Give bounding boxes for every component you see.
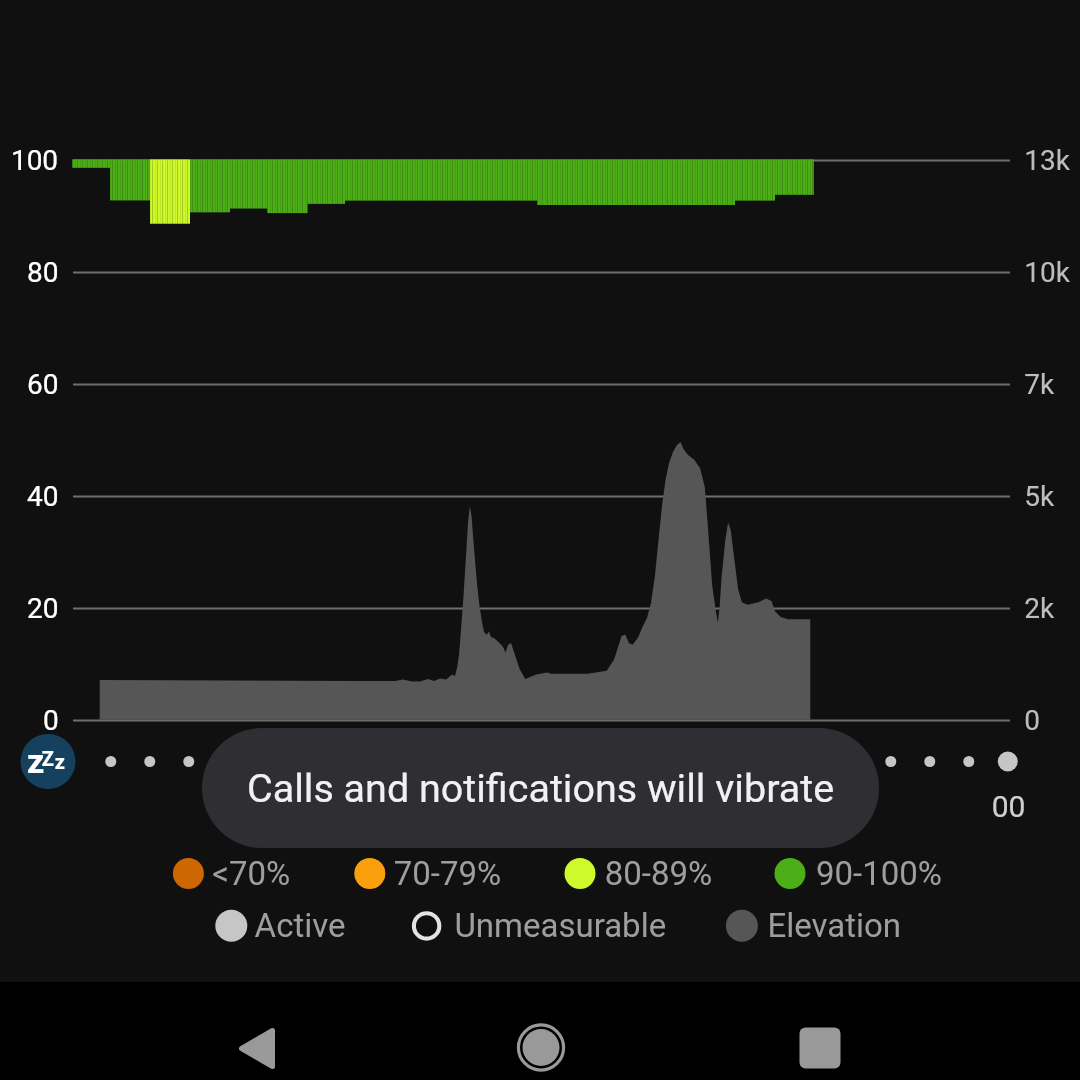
staticText: Calls and notifications will vibrate <box>247 765 835 811</box>
button[interactable]: Sleeping mode <box>21 734 76 789</box>
button[interactable]: Home <box>481 1003 601 1080</box>
button[interactable]: Recent apps <box>760 1003 880 1080</box>
button[interactable]: Calls and notifications will vibrate <box>202 728 879 848</box>
button[interactable]: Back <box>196 1003 316 1080</box>
